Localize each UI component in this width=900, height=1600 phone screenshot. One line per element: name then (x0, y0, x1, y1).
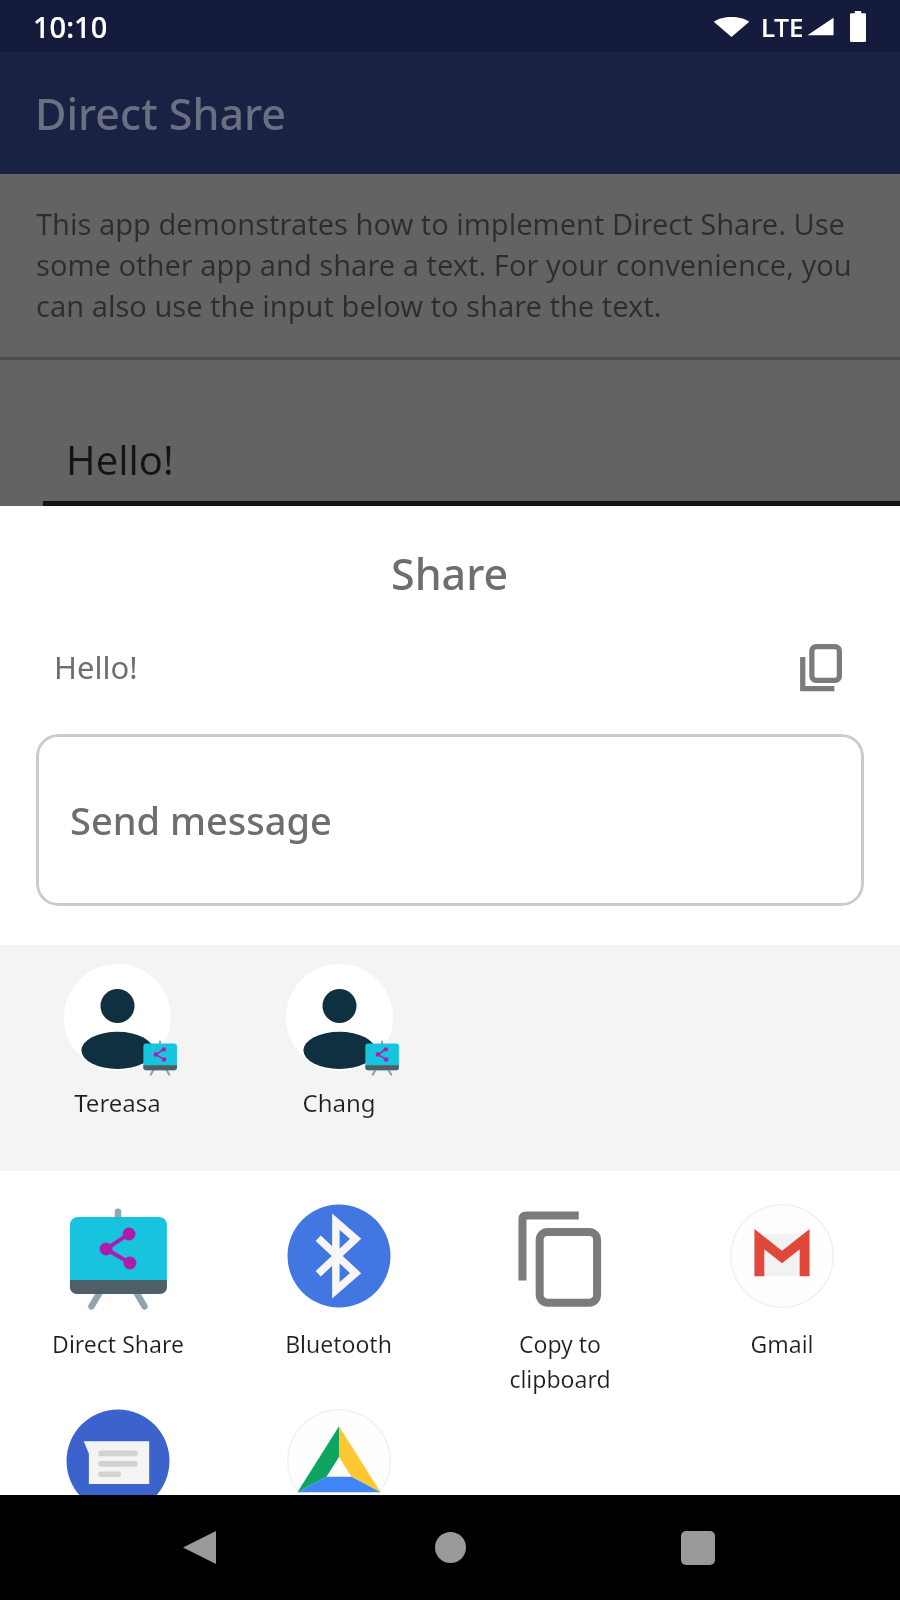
staticText: Direct Share (35, 84, 287, 143)
staticText: 10:10 (33, 7, 108, 46)
button[interactable]: Gmail (671, 1204, 893, 1359)
button[interactable]: Messages (7, 1409, 228, 1564)
staticText: Direct Share (52, 1328, 184, 1359)
button[interactable]: Direct Share (7, 1204, 228, 1359)
staticText: Send message (70, 794, 332, 846)
button[interactable]: Back (140, 1495, 258, 1600)
staticText: LTE (761, 9, 804, 44)
button[interactable]: Recent apps (639, 1495, 757, 1600)
staticText: This app demonstrates how to implement D… (36, 204, 896, 326)
staticText: Share (391, 544, 509, 603)
button[interactable]: Bluetooth (228, 1204, 449, 1359)
staticText: Tereasa (74, 1086, 161, 1119)
staticText: Hello! (66, 432, 174, 486)
staticText: Bluetooth (285, 1328, 392, 1359)
button[interactable]: Home (391, 1495, 509, 1600)
staticText: Gmail (750, 1328, 814, 1359)
button[interactable]: Tereasa (7, 945, 228, 1119)
staticText: Hello! (54, 646, 138, 688)
button[interactable]: Copy to clipboard (788, 635, 854, 701)
staticText: Chang (302, 1086, 376, 1119)
button[interactable]: Drive (228, 1409, 450, 1564)
button[interactable]: Copy to clipboard (449, 1204, 671, 1395)
staticText: Copy to clipboard (509, 1328, 611, 1395)
button[interactable]: Chang (228, 945, 450, 1119)
button[interactable]: Send message (36, 734, 864, 906)
